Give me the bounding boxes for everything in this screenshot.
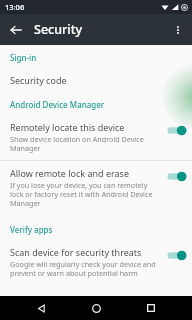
staticText: Android Device Manager [10, 99, 105, 110]
staticText: Sign-in [10, 52, 37, 63]
button[interactable]: Scan device for security threats [0, 240, 192, 285]
button[interactable]: Remotely locate this device [0, 115, 192, 160]
button[interactable]: More options [167, 19, 189, 41]
button[interactable]: Home [82, 296, 110, 320]
staticText: Remotely locate this device [10, 121, 125, 133]
button[interactable]: Allow remote lock and erase [0, 161, 192, 215]
staticText: Verify apps [10, 224, 53, 235]
staticText: Security [34, 21, 83, 38]
button[interactable]: Toggle: Remotely locate this device [165, 124, 187, 137]
staticText: Google will regularly check your device … [10, 259, 157, 278]
staticText: 13:06 [5, 2, 25, 12]
button[interactable]: Toggle: Scan device for security threats [165, 249, 187, 262]
staticText: Allow remote lock and erase [10, 167, 129, 179]
staticText: Show device location on Android Device M… [10, 134, 157, 153]
staticText: If you lose your device, you can remotel… [10, 180, 157, 208]
button[interactable]: Navigate up [5, 19, 27, 41]
button[interactable]: Recent apps [137, 296, 165, 320]
button[interactable]: Back [27, 296, 55, 320]
staticText: Scan device for security threats [10, 246, 142, 258]
staticText: Security code [10, 74, 67, 86]
button[interactable]: Toggle: Allow remote lock and erase [165, 170, 187, 183]
button[interactable]: Security code [0, 72, 192, 88]
